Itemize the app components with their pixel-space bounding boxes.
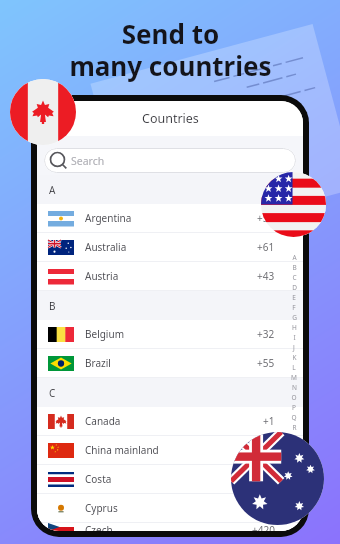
- button[interactable]: Canada: [37, 407, 303, 435]
- staticText: +420: [252, 523, 275, 531]
- staticText: S: [292, 433, 296, 443]
- staticText: +86: [257, 443, 275, 457]
- staticText: Austria: [85, 269, 119, 283]
- button[interactable]: China mainland: [37, 436, 303, 464]
- staticText: Brazil: [85, 356, 111, 370]
- staticText: Argentina: [85, 211, 132, 225]
- staticText: G: [292, 313, 297, 323]
- staticText: +61: [257, 240, 275, 254]
- staticText: Q: [291, 413, 297, 423]
- staticText: U: [292, 453, 297, 463]
- staticText: A: [292, 253, 297, 263]
- staticText: P: [292, 403, 296, 413]
- staticText: M: [291, 373, 297, 383]
- staticText: C: [292, 273, 297, 283]
- staticText: K: [292, 353, 297, 363]
- staticText: L: [292, 363, 296, 373]
- staticText: N: [292, 383, 297, 393]
- staticText: D: [292, 283, 297, 293]
- staticText: +1: [263, 414, 275, 428]
- staticText: Australia: [85, 240, 127, 254]
- staticText: Costa: [85, 472, 112, 486]
- button[interactable]: Czech: [37, 523, 303, 531]
- button[interactable]: Cyprus: [37, 494, 303, 522]
- staticText: Z: [292, 503, 296, 513]
- staticText: Cyprus: [85, 501, 118, 515]
- staticText: +357: [252, 501, 275, 515]
- staticText: W: [291, 473, 298, 483]
- staticText: O: [291, 393, 297, 403]
- button[interactable]: Brazil: [37, 349, 303, 377]
- staticText: Search: [71, 154, 105, 168]
- staticText: B: [292, 263, 297, 273]
- button[interactable]: Austria: [37, 262, 303, 290]
- button[interactable]: Costa: [37, 465, 303, 493]
- staticText: +32: [257, 327, 275, 341]
- staticText: Belgium: [85, 327, 124, 341]
- staticText: I: [293, 333, 296, 343]
- staticText: F: [292, 303, 296, 313]
- staticText: B: [49, 299, 56, 313]
- staticText: +506: [252, 472, 275, 486]
- staticText: +54: [257, 211, 275, 225]
- other: United States: [261, 172, 326, 237]
- other: Australia: [231, 432, 324, 525]
- button[interactable]: Alphabet index: [289, 253, 299, 513]
- button[interactable]: Search: [44, 148, 296, 173]
- staticText: J: [293, 343, 295, 353]
- staticText: H: [292, 323, 297, 333]
- button[interactable]: Argentina: [37, 204, 303, 232]
- staticText: Send to many countries: [69, 16, 272, 84]
- button[interactable]: Belgium: [37, 320, 303, 348]
- staticText: C: [49, 386, 56, 400]
- staticText: A: [49, 183, 56, 197]
- other: Canada: [10, 79, 76, 145]
- staticText: E: [292, 293, 296, 303]
- staticText: +55: [257, 356, 275, 370]
- staticText: R: [292, 423, 297, 433]
- button[interactable]: Australia: [37, 233, 303, 261]
- staticText: Czech: [85, 523, 113, 531]
- staticText: China mainland: [85, 443, 159, 457]
- staticText: +43: [257, 269, 275, 283]
- staticText: Canada: [85, 414, 121, 428]
- staticText: Countries: [142, 110, 199, 127]
